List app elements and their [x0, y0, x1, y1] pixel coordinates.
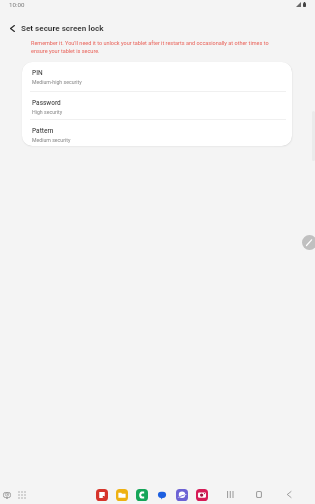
- staticText: PIN: [32, 69, 43, 77]
- button[interactable]: Camera: [196, 489, 208, 501]
- button[interactable]: Password: [22, 92, 292, 120]
- staticText: ensure your tablet is secure.: [31, 48, 100, 54]
- button[interactable]: Pattern: [22, 120, 292, 146]
- staticText: Medium security: [32, 137, 71, 143]
- button[interactable]: Recent apps: [223, 487, 237, 501]
- button[interactable]: Task switcher: [0, 488, 14, 502]
- button[interactable]: All apps: [15, 488, 29, 502]
- button[interactable]: Home: [252, 487, 266, 501]
- staticText: High security: [32, 109, 63, 115]
- staticText: Set secure screen lock: [21, 23, 104, 32]
- button[interactable]: Back: [282, 487, 296, 501]
- button[interactable]: Samsung Notes: [96, 489, 108, 501]
- staticText: Remember it. You'll need it to unlock yo…: [31, 40, 269, 46]
- staticText: 10:00: [9, 1, 25, 8]
- button[interactable]: PIN: [22, 62, 292, 92]
- button[interactable]: Edge panel handle: [302, 235, 315, 250]
- button[interactable]: Navigate up: [2, 18, 23, 39]
- button[interactable]: My Files: [116, 489, 128, 501]
- staticText: Medium-high security: [32, 79, 82, 85]
- button[interactable]: Samsung Internet: [176, 489, 188, 501]
- button[interactable]: Phone: [136, 489, 148, 501]
- button[interactable]: Messages: [156, 489, 168, 501]
- staticText: Password: [32, 99, 61, 107]
- staticText: Pattern: [32, 127, 54, 135]
